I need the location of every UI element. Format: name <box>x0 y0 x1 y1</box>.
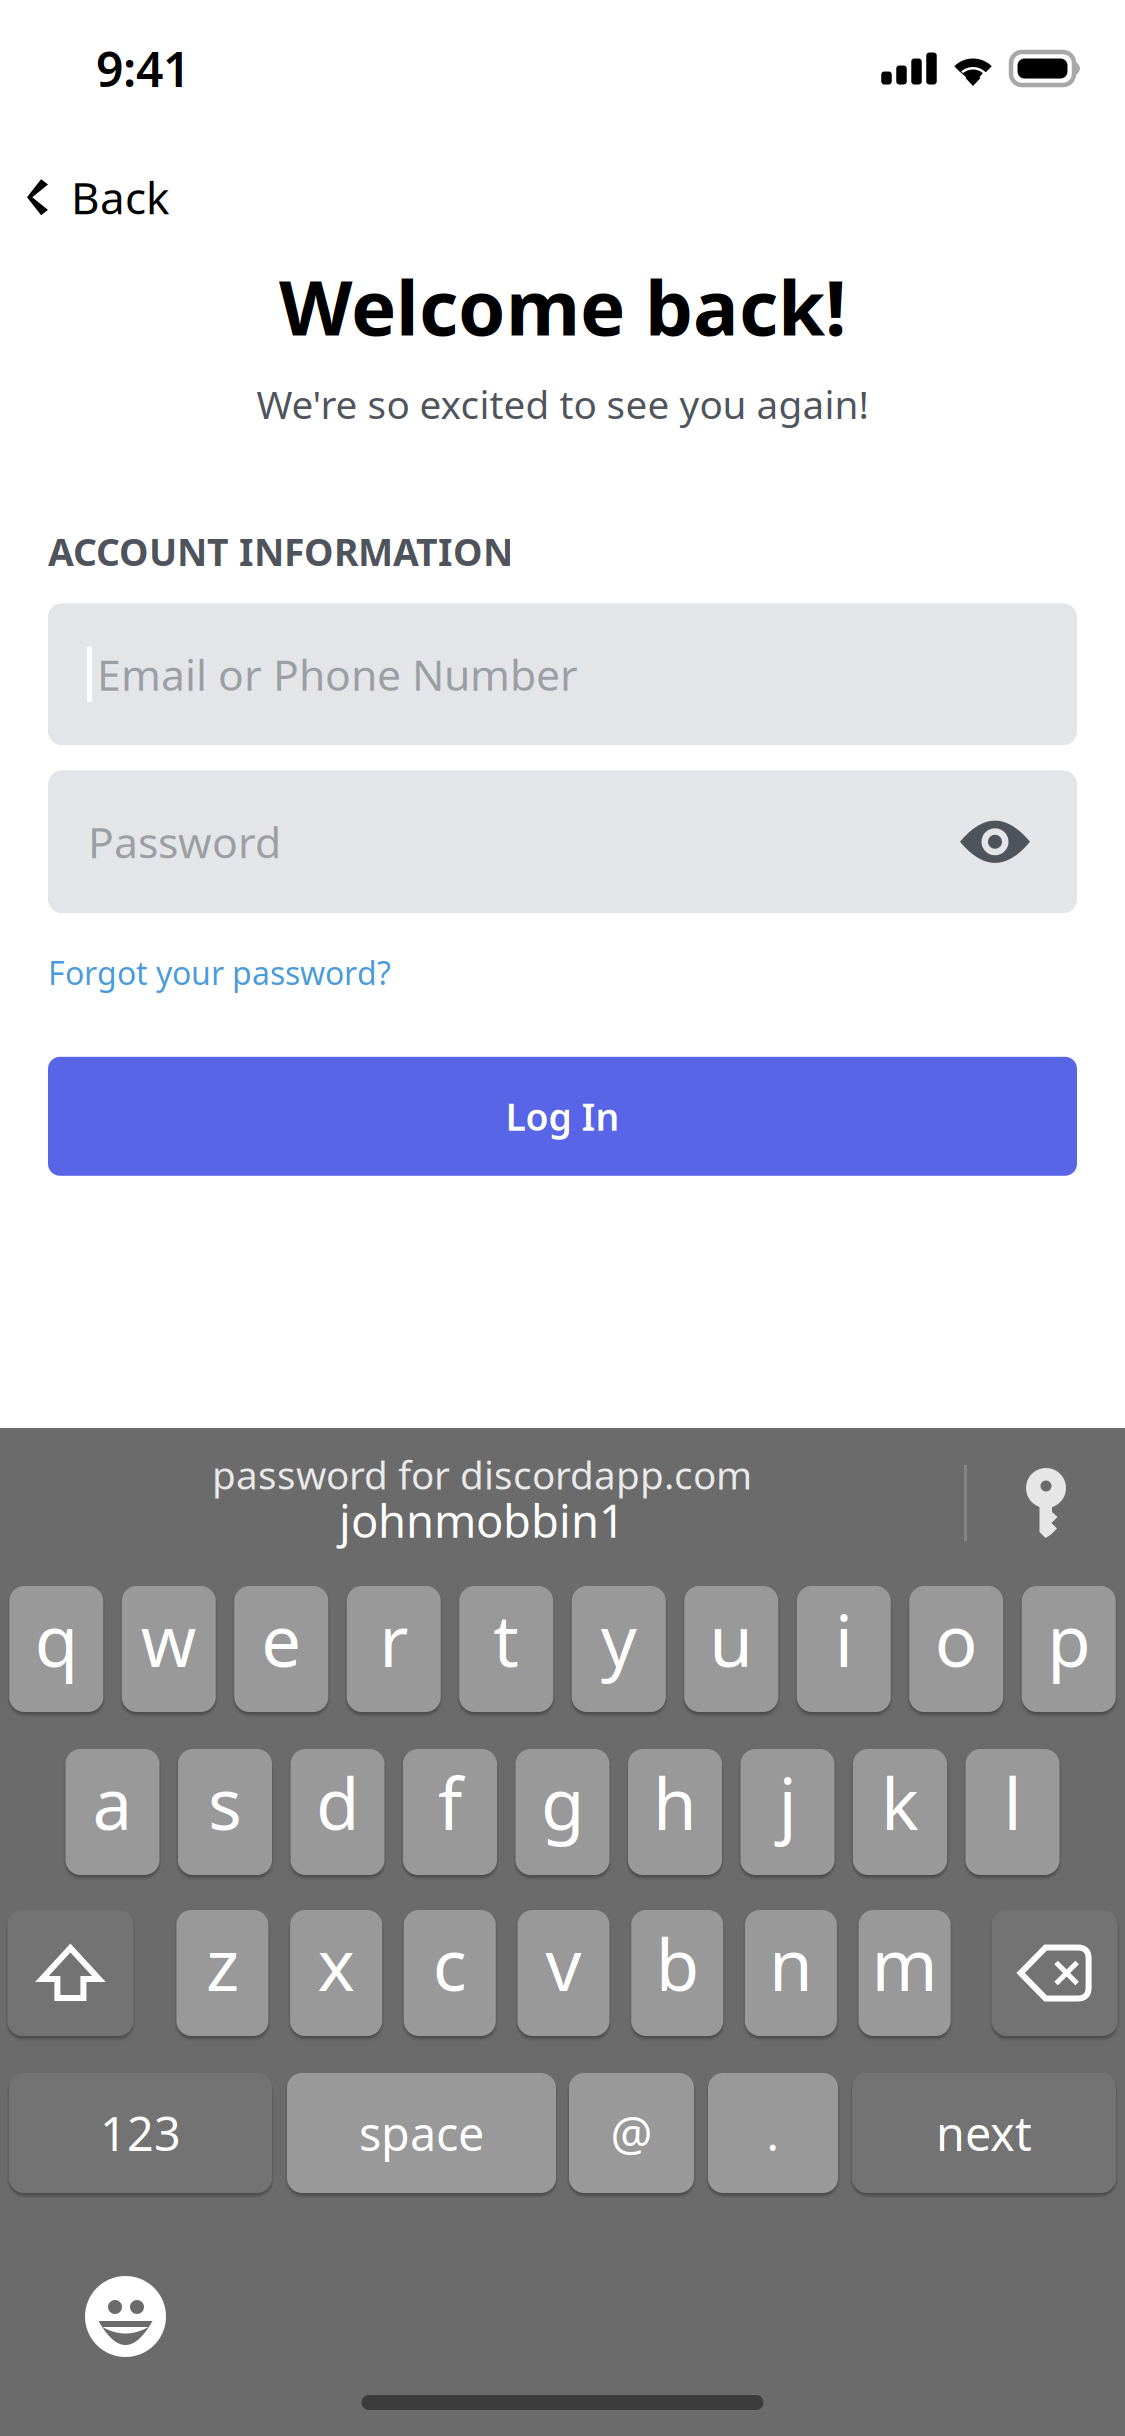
button[interactable]: Shift <box>7 1910 133 2036</box>
staticText: l <box>1003 1756 1021 1849</box>
staticText: 9:41 <box>96 37 190 100</box>
button[interactable]: j <box>740 1749 834 1875</box>
button[interactable]: g <box>515 1749 609 1875</box>
staticText: m <box>872 1917 938 2010</box>
staticText: 123 <box>100 2102 181 2164</box>
button[interactable]: l <box>965 1749 1059 1875</box>
staticText: @ <box>610 2102 652 2164</box>
button[interactable]: t <box>459 1586 553 1712</box>
button[interactable]: space <box>287 2073 556 2193</box>
button[interactable]: a <box>65 1749 159 1875</box>
staticText: n <box>769 1917 813 2010</box>
staticText: u <box>709 1593 753 1686</box>
button[interactable]: h <box>628 1749 722 1875</box>
button[interactable]: 123 <box>9 2073 272 2193</box>
staticText: b <box>656 1917 699 2010</box>
button[interactable]: w <box>122 1586 216 1712</box>
staticText: next <box>936 2102 1032 2164</box>
button[interactable]: s <box>178 1749 272 1875</box>
staticText: t <box>493 1593 519 1686</box>
staticText: h <box>653 1756 697 1849</box>
staticText: We're so excited to see you again! <box>256 378 868 430</box>
button[interactable]: p <box>1022 1586 1116 1712</box>
button[interactable]: Passwords <box>967 1449 1125 1567</box>
button[interactable]: . <box>708 2073 838 2193</box>
button[interactable]: d <box>290 1749 384 1875</box>
button[interactable]: n <box>745 1910 837 2036</box>
staticText: ACCOUNT INFORMATION <box>48 527 513 576</box>
staticText: Welcome back! <box>279 255 846 356</box>
button[interactable]: @ <box>569 2073 694 2193</box>
staticText: Password <box>88 813 281 870</box>
button[interactable]: next <box>852 2073 1116 2193</box>
staticText: r <box>379 1593 408 1686</box>
button[interactable]: f <box>403 1749 497 1875</box>
staticText: Forgot your password? <box>48 951 391 994</box>
staticText: i <box>835 1593 853 1686</box>
staticText: q <box>35 1593 78 1686</box>
staticText: j <box>778 1756 796 1849</box>
staticText: space <box>359 2102 484 2164</box>
button[interactable]: o <box>909 1586 1003 1712</box>
staticText: c <box>433 1917 467 2010</box>
staticText: password for discordapp.com <box>212 1449 752 1500</box>
staticText: v <box>545 1917 581 2010</box>
staticText: Back <box>71 168 169 226</box>
staticText: s <box>208 1756 242 1849</box>
button[interactable]: i <box>797 1586 891 1712</box>
button[interactable]: v <box>517 1910 609 2036</box>
staticText: . <box>766 2102 779 2164</box>
staticText: a <box>92 1756 132 1849</box>
staticText: y <box>601 1593 637 1686</box>
staticText: f <box>438 1756 462 1849</box>
button[interactable]: e <box>234 1586 328 1712</box>
button[interactable]: Delete <box>992 1910 1118 2036</box>
button[interactable]: c <box>404 1910 496 2036</box>
staticText: k <box>881 1756 919 1849</box>
button[interactable]: Forgot your password? <box>48 939 391 1006</box>
staticText: o <box>935 1593 978 1686</box>
staticText: w <box>141 1593 197 1686</box>
staticText: e <box>261 1593 301 1686</box>
staticText: p <box>1047 1593 1090 1686</box>
button[interactable]: b <box>631 1910 723 2036</box>
staticText: d <box>316 1756 359 1849</box>
button[interactable]: y <box>572 1586 666 1712</box>
button[interactable]: r <box>347 1586 441 1712</box>
staticText: Email or Phone Number <box>97 646 578 703</box>
button[interactable]: z <box>176 1910 268 2036</box>
staticText: z <box>206 1917 239 2010</box>
button[interactable]: q <box>9 1586 103 1712</box>
button[interactable]: Show password <box>952 812 1038 872</box>
button[interactable]: k <box>853 1749 947 1875</box>
staticText: g <box>541 1756 584 1849</box>
button[interactable]: Log In <box>48 1057 1077 1176</box>
button[interactable]: Back <box>0 142 196 252</box>
button[interactable]: m <box>859 1910 951 2036</box>
staticText: Log In <box>505 1091 619 1141</box>
staticText: x <box>318 1917 355 2010</box>
staticText: johnmobbin1 <box>339 1490 625 1550</box>
button[interactable]: u <box>684 1586 778 1712</box>
button[interactable]: x <box>290 1910 382 2036</box>
button[interactable]: Emoji <box>85 2276 166 2357</box>
